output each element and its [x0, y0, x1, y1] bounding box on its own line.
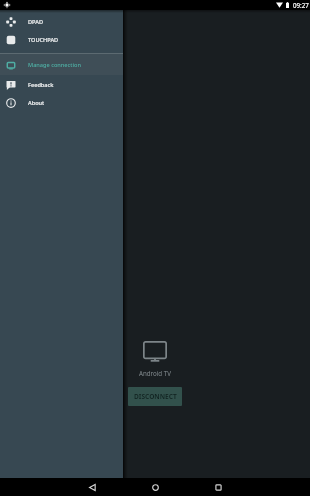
button[interactable]: TOUCHPAD	[0, 31, 123, 49]
staticText: Android TV	[139, 369, 171, 377]
staticText: DISCONNECT	[134, 392, 177, 401]
staticText: Manage connection	[28, 61, 81, 69]
button[interactable]: Manage connection	[0, 54, 123, 75]
button[interactable]: Recent apps	[187, 478, 249, 496]
staticText: About	[28, 99, 45, 107]
button[interactable]: Feedback	[0, 75, 123, 94]
button[interactable]: DISCONNECT	[128, 387, 182, 406]
staticText: 09:27	[293, 1, 309, 9]
staticText: TOUCHPAD	[28, 36, 59, 44]
staticText: Feedback	[28, 81, 54, 89]
button[interactable]: DPAD	[0, 13, 123, 31]
button[interactable]: About	[0, 94, 123, 112]
staticText: DPAD	[28, 18, 43, 26]
button[interactable]: Home	[124, 478, 186, 496]
button[interactable]: Back	[61, 478, 123, 496]
